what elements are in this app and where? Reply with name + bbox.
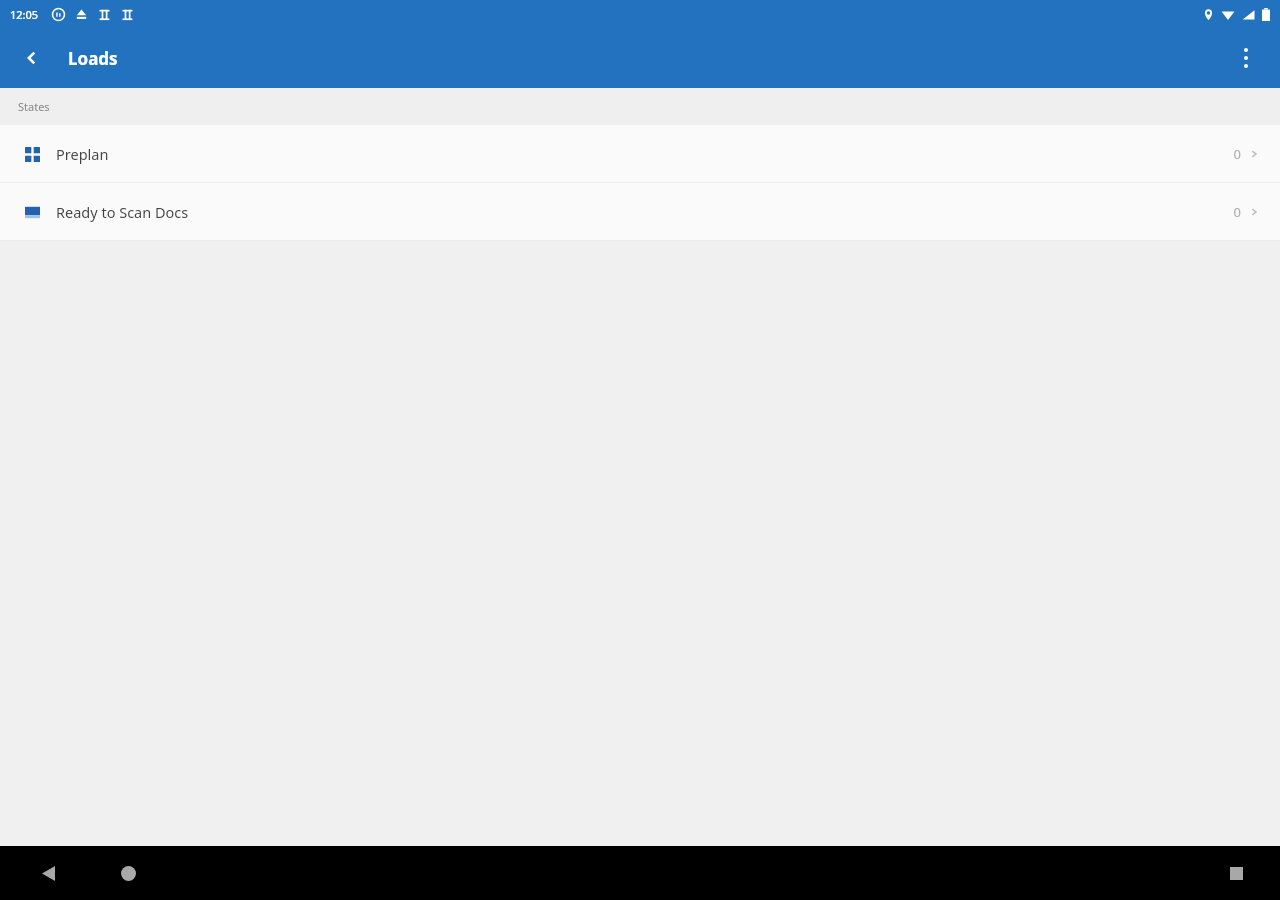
button[interactable]: Recent apps (1214, 851, 1258, 895)
staticText: States (18, 99, 50, 114)
staticText: Ready to Scan Docs (56, 202, 189, 222)
button[interactable]: Back (26, 851, 70, 895)
button[interactable]: Preplan (0, 125, 1280, 182)
staticText: 0 (1233, 203, 1241, 221)
staticText: Loads (68, 47, 118, 70)
staticText: 0 (1233, 145, 1241, 163)
button[interactable]: Home (106, 851, 150, 895)
button[interactable]: Back (10, 36, 54, 80)
button[interactable]: More options (1224, 36, 1268, 80)
staticText: Preplan (56, 144, 109, 164)
staticText: 12:05 (10, 7, 39, 22)
button[interactable]: Ready to Scan Docs (0, 183, 1280, 240)
